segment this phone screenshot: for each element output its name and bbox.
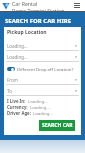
staticText: I Live In:: [7, 98, 26, 104]
button[interactable]: SEARCH CAR: [39, 120, 75, 131]
staticText: Currency:: [7, 104, 28, 110]
staticText: Loading...: [33, 110, 53, 116]
staticText: To: [7, 88, 12, 94]
button[interactable]: Driver Age:: [4, 110, 81, 116]
button[interactable]: Menu: [72, 1, 82, 11]
button[interactable]: Different Drop-off Location?: [4, 64, 81, 73]
button[interactable]: Currency:: [4, 104, 81, 110]
button[interactable]: Loading...: [4, 52, 81, 61]
staticText: Different Drop-off Location?: [17, 66, 74, 72]
staticText: Rome Termini Station: [12, 7, 65, 11]
button[interactable]: I Live In:: [4, 98, 81, 104]
staticText: Loading...: [7, 43, 28, 49]
staticText: SEARCH FOR CAR HIRE: [5, 17, 72, 25]
staticText: Driver Age:: [7, 110, 31, 116]
button[interactable]: From: [4, 75, 81, 84]
button[interactable]: To: [4, 86, 81, 95]
staticText: Loading...: [30, 104, 50, 110]
staticText: Pickup Location: [7, 29, 47, 36]
button[interactable]: Loading...: [4, 41, 81, 50]
staticText: Loading...: [7, 54, 28, 60]
staticText: From: [7, 77, 19, 83]
staticText: SEARCH CAR: [42, 122, 73, 129]
staticText: Loading...: [28, 98, 48, 104]
staticText: Car Rental: [12, 0, 38, 7]
